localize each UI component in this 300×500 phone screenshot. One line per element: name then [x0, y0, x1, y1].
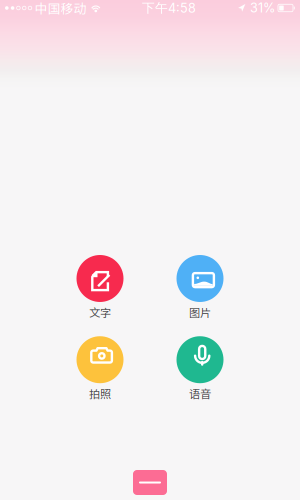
staticText: 中国移动	[32, 0, 87, 17]
staticText: 31%	[250, 0, 275, 16]
button[interactable]: 语音	[160, 336, 240, 401]
button[interactable]: 拍照	[60, 336, 140, 401]
button[interactable]: Close	[133, 470, 167, 495]
staticText: 拍照	[89, 385, 111, 401]
staticText: 下午4:58	[142, 0, 196, 16]
button[interactable]: 文字	[60, 255, 140, 320]
button[interactable]: 图片	[160, 255, 240, 320]
staticText: 文字	[89, 304, 111, 320]
staticText: 图片	[189, 304, 211, 320]
staticText: 语音	[189, 385, 211, 401]
